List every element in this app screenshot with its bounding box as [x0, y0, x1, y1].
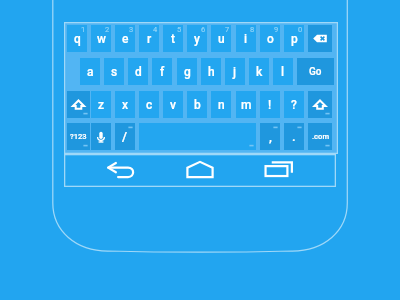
staticText: ?: [291, 98, 297, 112]
staticText: f: [160, 65, 165, 79]
staticText: j: [233, 65, 237, 79]
staticText: 4: [153, 25, 158, 34]
staticText: i: [244, 32, 248, 46]
staticText: a: [87, 65, 94, 79]
staticText: 9: [274, 25, 279, 34]
button[interactable]: ,: [260, 123, 280, 150]
button[interactable]: 0: [284, 25, 304, 52]
button[interactable]: l: [273, 58, 293, 85]
staticText: o: [267, 32, 274, 46]
button[interactable]: Shift: [67, 91, 90, 118]
button[interactable]: .com: [308, 123, 332, 150]
staticText: e: [122, 32, 129, 46]
button[interactable]: 4: [139, 25, 159, 52]
button[interactable]: j: [225, 58, 245, 85]
staticText: 6: [201, 25, 206, 34]
staticText: 1: [81, 25, 86, 34]
staticText: d: [135, 65, 142, 79]
button[interactable]: Go: [297, 58, 334, 85]
staticText: v: [170, 98, 176, 112]
staticText: 7: [225, 25, 230, 34]
staticText: y: [194, 32, 200, 46]
staticText: /: [122, 129, 128, 144]
staticText: h: [208, 65, 215, 79]
button[interactable]: 1: [67, 25, 87, 52]
staticText: w: [97, 32, 106, 46]
button[interactable]: x: [115, 91, 135, 118]
button[interactable]: Home: [178, 153, 222, 186]
staticText: p: [291, 32, 298, 46]
button[interactable]: /: [115, 123, 135, 150]
button[interactable]: Recents: [257, 153, 301, 185]
staticText: Go: [309, 66, 322, 78]
staticText: ,: [269, 129, 272, 144]
button[interactable]: 3: [115, 25, 135, 52]
staticText: n: [218, 98, 225, 112]
button[interactable]: ?: [284, 91, 304, 118]
staticText: u: [218, 32, 225, 46]
staticText: 5: [177, 25, 182, 34]
staticText: q: [74, 32, 81, 46]
staticText: z: [98, 98, 105, 112]
staticText: ?123: [70, 132, 87, 141]
button[interactable]: 8: [236, 25, 256, 52]
button[interactable]: z: [91, 91, 111, 118]
button[interactable]: d: [128, 58, 148, 85]
button[interactable]: 2: [91, 25, 111, 52]
button[interactable]: 9: [260, 25, 280, 52]
staticText: b: [194, 98, 201, 112]
staticText: 2: [105, 25, 110, 34]
staticText: l: [281, 65, 285, 79]
button[interactable]: Shift: [308, 91, 332, 118]
staticText: x: [122, 98, 129, 112]
button[interactable]: !: [260, 91, 280, 118]
button[interactable]: 5: [163, 25, 183, 52]
staticText: .: [292, 129, 296, 144]
staticText: !: [268, 98, 272, 112]
staticText: s: [111, 65, 118, 79]
staticText: 8: [250, 25, 255, 34]
button[interactable]: n: [211, 91, 231, 118]
button[interactable]: a: [80, 58, 100, 85]
button[interactable]: Backspace: [308, 25, 332, 52]
button[interactable]: .: [284, 123, 304, 150]
staticText: .com: [312, 132, 329, 141]
button[interactable]: 6: [187, 25, 207, 52]
button[interactable]: Voice input: [91, 123, 111, 150]
staticText: g: [184, 65, 191, 79]
staticText: c: [146, 98, 153, 112]
button[interactable]: f: [152, 58, 172, 85]
button[interactable]: s: [104, 58, 124, 85]
button[interactable]: Space: [139, 123, 256, 150]
button[interactable]: 7: [211, 25, 231, 52]
staticText: t: [171, 32, 175, 46]
button[interactable]: k: [249, 58, 269, 85]
staticText: r: [147, 32, 152, 46]
button[interactable]: g: [177, 58, 197, 85]
button[interactable]: v: [163, 91, 183, 118]
staticText: 3: [129, 25, 134, 34]
button[interactable]: Back: [99, 154, 142, 186]
button[interactable]: ?123: [67, 123, 90, 150]
staticText: m: [241, 98, 252, 112]
button[interactable]: h: [201, 58, 221, 85]
staticText: k: [256, 65, 263, 79]
button[interactable]: b: [187, 91, 207, 118]
button[interactable]: c: [139, 91, 159, 118]
button[interactable]: m: [236, 91, 256, 118]
staticText: 0: [298, 25, 303, 34]
